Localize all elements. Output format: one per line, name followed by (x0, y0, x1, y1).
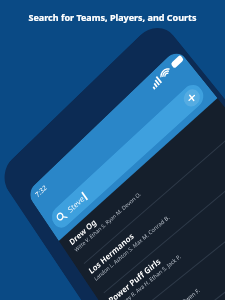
staticText: Drew Og (67, 216, 98, 247)
staticText: Delaney R. Ava H. Ethan S. Jack P. (113, 252, 183, 300)
button[interactable]: Los Hermanos (78, 128, 225, 299)
staticText: Witte V. Ethan S. Ryan M. Devon O. (73, 190, 142, 254)
staticText: Landon L. Ashton S. Max M. Conrad B. (93, 213, 171, 283)
button[interactable]: Add (180, 86, 203, 110)
button[interactable]: Night Owls (138, 222, 225, 300)
button[interactable]: Drew Og (59, 98, 225, 270)
other: Search (55, 209, 68, 224)
staticText: Sam T. Riley C. Nate W. Owen F. (133, 286, 202, 300)
button[interactable]: Wolf Pack (118, 189, 225, 300)
staticText: Steve (65, 193, 86, 215)
staticText: Power Puff Girls (106, 255, 163, 300)
button[interactable]: Hoop Dreams (160, 255, 225, 300)
button[interactable]: Power Puff Girls (97, 158, 225, 300)
staticText: 7:32 (33, 182, 48, 199)
button[interactable]: Search (48, 80, 208, 232)
staticText: Los Hermanos (86, 230, 136, 276)
staticText: Search for Teams, Players, and Courts (0, 11, 225, 23)
